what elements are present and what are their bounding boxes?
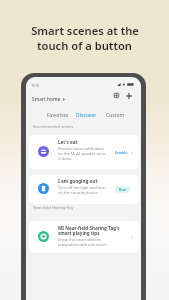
button[interactable]: Custom	[104, 110, 127, 120]
button[interactable]: Enable	[115, 150, 133, 155]
staticText: Smart scenes at the	[31, 23, 139, 38]
button[interactable]: Smart home	[32, 96, 65, 103]
button[interactable]: I am gonging out	[29, 175, 139, 204]
staticText: touch of a button	[37, 38, 132, 53]
staticText: Custom	[106, 112, 125, 118]
staticText: Near-field Sharing Tag	[33, 205, 73, 210]
staticText: Receive voice notification on the Mi AI …	[58, 146, 106, 161]
button[interactable]: Favorites	[45, 110, 71, 120]
button[interactable]: MI Near-field Sharing Tag's smart playin…	[29, 221, 139, 253]
staticText: Favorites	[47, 112, 69, 118]
staticText: Run	[119, 187, 127, 192]
staticText: Enjoy the smart devices integration with…	[58, 237, 108, 247]
button[interactable]: Discover	[74, 110, 99, 120]
staticText: Let's eat	[58, 139, 78, 145]
staticText: I am gonging out	[58, 178, 98, 184]
staticText: Enable	[115, 150, 128, 155]
staticText: 9:16	[32, 83, 40, 88]
staticText: Turn off the light and turn on the secur…	[58, 185, 106, 195]
button[interactable]: Run	[115, 186, 130, 193]
button[interactable]: Scan code	[111, 90, 122, 101]
button[interactable]: Let's eat	[29, 135, 139, 169]
staticText: Smart home	[32, 96, 61, 103]
staticText: Discover	[76, 112, 97, 118]
staticText: MI Near-field Sharing Tag's smart playin…	[58, 225, 120, 236]
staticText: Recommended scenes	[33, 124, 74, 129]
button[interactable]: Add device	[123, 90, 134, 101]
